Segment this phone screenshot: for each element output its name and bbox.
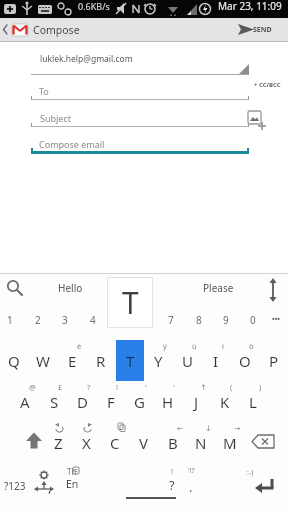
staticText: ? bbox=[87, 382, 91, 392]
button[interactable]: ! bbox=[188, 463, 212, 509]
button[interactable] bbox=[248, 422, 284, 463]
staticText: Th bbox=[67, 466, 77, 477]
staticText: luklek.help@gmail.com bbox=[40, 53, 133, 65]
button[interactable] bbox=[30, 463, 58, 509]
button[interactable] bbox=[28, 134, 252, 158]
button[interactable]: Q bbox=[0, 340, 28, 381]
staticText: ! bbox=[171, 466, 174, 476]
staticText: P bbox=[269, 351, 279, 371]
button[interactable]: 4 bbox=[53, 308, 133, 332]
staticText: T bbox=[126, 351, 135, 371]
staticText: 7 bbox=[168, 313, 174, 327]
staticText: ← bbox=[177, 424, 184, 433]
button[interactable]: G bbox=[125, 381, 153, 422]
staticText: E bbox=[68, 351, 77, 371]
button[interactable]: 1 bbox=[0, 308, 50, 332]
button[interactable]: P bbox=[260, 340, 288, 381]
staticText: Hello bbox=[58, 281, 83, 295]
staticText: En bbox=[66, 477, 79, 491]
button[interactable] bbox=[28, 108, 242, 130]
button[interactable]: U bbox=[173, 340, 201, 381]
button[interactable] bbox=[0, 274, 36, 306]
button[interactable] bbox=[28, 48, 252, 76]
staticText: Z bbox=[54, 433, 63, 453]
staticText: ' bbox=[145, 382, 147, 392]
button[interactable]: 8 bbox=[159, 308, 239, 332]
button[interactable]: J bbox=[182, 381, 210, 422]
staticText: @ bbox=[29, 382, 36, 392]
staticText: Y bbox=[154, 351, 163, 371]
button[interactable]: + CC/BCC bbox=[227, 73, 288, 97]
button[interactable] bbox=[252, 463, 286, 509]
staticText: Compose bbox=[33, 23, 80, 37]
staticText: è bbox=[77, 341, 82, 351]
button[interactable]: ?123 bbox=[0, 474, 55, 498]
staticText: 8 bbox=[196, 313, 202, 327]
button[interactable]: R bbox=[87, 340, 115, 381]
button[interactable]: I bbox=[202, 340, 230, 381]
staticText: 1 bbox=[7, 313, 13, 327]
staticText: R bbox=[96, 351, 106, 371]
button[interactable] bbox=[18, 422, 50, 463]
button[interactable]: SEND bbox=[230, 18, 288, 41]
button[interactable]: E bbox=[58, 340, 86, 381]
button[interactable] bbox=[245, 108, 271, 132]
staticText: 4 bbox=[90, 313, 96, 327]
button[interactable]: C bbox=[101, 422, 129, 463]
button[interactable]: A bbox=[11, 381, 39, 422]
staticText: Please bbox=[203, 281, 234, 295]
staticText: Compose email bbox=[39, 138, 105, 150]
button[interactable]: X bbox=[72, 422, 100, 463]
button[interactable]: Y bbox=[144, 340, 172, 381]
staticText: H bbox=[162, 392, 174, 412]
button[interactable]: V bbox=[130, 422, 158, 463]
button[interactable]: Please bbox=[178, 276, 258, 300]
staticText: 0.6KB/s bbox=[78, 0, 110, 12]
staticText: W bbox=[36, 351, 50, 371]
button[interactable]: S bbox=[40, 381, 68, 422]
staticText: + CC/BCC bbox=[254, 81, 281, 89]
staticText: ! bbox=[116, 382, 119, 392]
button[interactable]: 3 bbox=[25, 308, 105, 332]
staticText: 3 bbox=[62, 313, 68, 327]
staticText: ? bbox=[169, 476, 175, 494]
button[interactable] bbox=[28, 80, 252, 102]
button[interactable]: D bbox=[68, 381, 96, 422]
button[interactable]: T bbox=[116, 340, 144, 381]
staticText: 2 bbox=[35, 313, 41, 327]
button[interactable]: F bbox=[97, 381, 125, 422]
button[interactable]: N bbox=[187, 422, 215, 463]
button[interactable]: K bbox=[211, 381, 239, 422]
button[interactable] bbox=[112, 463, 192, 509]
button[interactable]: W bbox=[29, 340, 57, 381]
staticText: ••• bbox=[272, 315, 280, 325]
button[interactable]: 9 bbox=[186, 308, 266, 332]
staticText: → bbox=[234, 424, 241, 433]
staticText: '!? bbox=[188, 466, 195, 476]
button[interactable]: L bbox=[239, 381, 267, 422]
button[interactable]: B bbox=[159, 422, 187, 463]
staticText: B bbox=[168, 433, 178, 453]
staticText: T bbox=[122, 282, 139, 323]
button[interactable]: H bbox=[154, 381, 182, 422]
button[interactable]: 0 bbox=[213, 308, 288, 332]
staticText: ì bbox=[222, 341, 224, 351]
button[interactable]: 7 bbox=[131, 308, 211, 332]
staticText: ù bbox=[192, 341, 197, 351]
staticText: M bbox=[223, 433, 237, 453]
button[interactable]: ••• bbox=[236, 308, 288, 332]
button[interactable]: Z bbox=[44, 422, 72, 463]
button[interactable]: , bbox=[62, 463, 90, 509]
button[interactable]: Hello bbox=[30, 276, 110, 300]
staticText: ý bbox=[163, 341, 167, 351]
button[interactable]: M bbox=[216, 422, 244, 463]
staticText: I bbox=[213, 351, 219, 371]
button[interactable]: O bbox=[231, 340, 259, 381]
button[interactable]: 2 bbox=[0, 308, 78, 332]
staticText: F bbox=[107, 392, 115, 412]
staticText: ?123 bbox=[4, 479, 26, 493]
button[interactable]: Compose bbox=[0, 18, 110, 41]
staticText: £ bbox=[58, 382, 63, 392]
